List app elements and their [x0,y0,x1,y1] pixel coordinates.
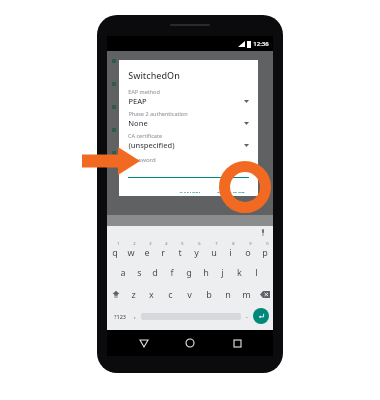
staticText: e [144,246,150,258]
button[interactable]: ?123 [111,305,129,327]
staticText: v [187,288,192,300]
staticText: g [186,266,192,278]
staticText: r [161,246,165,258]
button[interactable]: m [237,283,256,305]
button[interactable]: 5 [171,239,188,261]
button[interactable]: CA certificate [128,132,249,154]
button[interactable]: 7 [205,239,222,261]
staticText: u [211,246,217,258]
button[interactable]: EAP method [128,88,249,110]
button[interactable]: 4 [155,239,171,261]
staticText: k [237,266,242,278]
button[interactable]: 6 [188,239,205,261]
staticText: f [170,266,174,278]
staticText: CANCEL [179,190,202,193]
button[interactable]: 1 [107,239,123,261]
button[interactable]: , [129,305,141,327]
button[interactable]: 8 [222,239,239,261]
button[interactable]: b [199,283,218,305]
staticText: s [137,266,142,278]
staticText: b [206,288,212,300]
button[interactable]: l [248,261,265,283]
staticText: (unspecified) [128,140,175,150]
button[interactable]: 0 [256,239,273,261]
staticText: a [120,266,126,278]
button[interactable]: CANCEL [175,187,206,196]
staticText: i [229,246,232,258]
staticText: c [168,288,173,300]
staticText: j [221,266,224,278]
button[interactable]: f [163,261,180,283]
other: Pointer to password field [82,145,140,177]
other: Highlight on Connect [219,161,271,213]
staticText: 8 [232,241,235,246]
button[interactable]: 9 [239,239,256,261]
button[interactable]: Back [134,333,154,353]
button[interactable]: g [180,261,197,283]
button[interactable]: Home [180,333,200,353]
button[interactable]: d [147,261,163,283]
staticText: m [242,288,251,300]
staticText: d [152,266,158,278]
button[interactable]: c [161,283,180,305]
other: Voice input [261,229,265,236]
button[interactable]: Backspace [256,283,273,305]
button[interactable]: Phase 2 authentication [128,110,249,132]
button[interactable]: z [124,283,142,305]
staticText: 4 [165,241,168,246]
staticText: Phase 2 authentication [128,110,188,117]
button[interactable]: x [142,283,161,305]
button[interactable]: 3 [139,239,155,261]
button[interactable]: . [241,305,253,327]
staticText: 7 [215,241,218,246]
button[interactable]: 2 [123,239,139,261]
staticText: o [245,246,251,258]
staticText: SwitchedOn [128,69,180,81]
staticText: n [225,288,231,300]
staticText: 3 [149,241,152,246]
staticText: 6 [198,241,201,246]
button[interactable]: Shift [107,283,124,305]
staticText: 2 [133,241,136,246]
button[interactable]: Enter [253,308,269,324]
staticText: t [178,246,182,258]
staticText: p [262,246,268,258]
staticText: 9 [249,241,252,246]
button[interactable]: CONNECT [212,187,249,196]
staticText: q [112,246,118,258]
staticText: 0 [266,241,269,246]
staticText: w [127,246,135,258]
staticText: EAP method [128,88,160,95]
staticText: 1 [117,241,120,246]
staticText: , [134,311,136,321]
staticText: 5 [181,241,184,246]
button[interactable]: Recent apps [227,333,247,353]
button[interactable]: k [231,261,248,283]
staticText: ?123 [114,313,126,320]
staticText: . [246,311,248,321]
button[interactable]: a [115,261,131,283]
button[interactable]: s [131,261,147,283]
button[interactable]: j [214,261,231,283]
staticText: l [255,266,258,278]
staticText: None [128,118,148,128]
staticText: PEAP [128,96,147,106]
staticText: h [203,266,209,278]
button[interactable]: n [218,283,237,305]
button[interactable]: v [180,283,199,305]
staticText: z [131,288,136,300]
staticText: y [194,246,199,258]
button[interactable]: h [197,261,214,283]
staticText: x [149,288,154,300]
staticText: CONNECT [216,190,245,193]
staticText: CA certificate [128,132,162,139]
staticText: Password [128,156,156,164]
staticText: 12:36 [253,40,269,48]
